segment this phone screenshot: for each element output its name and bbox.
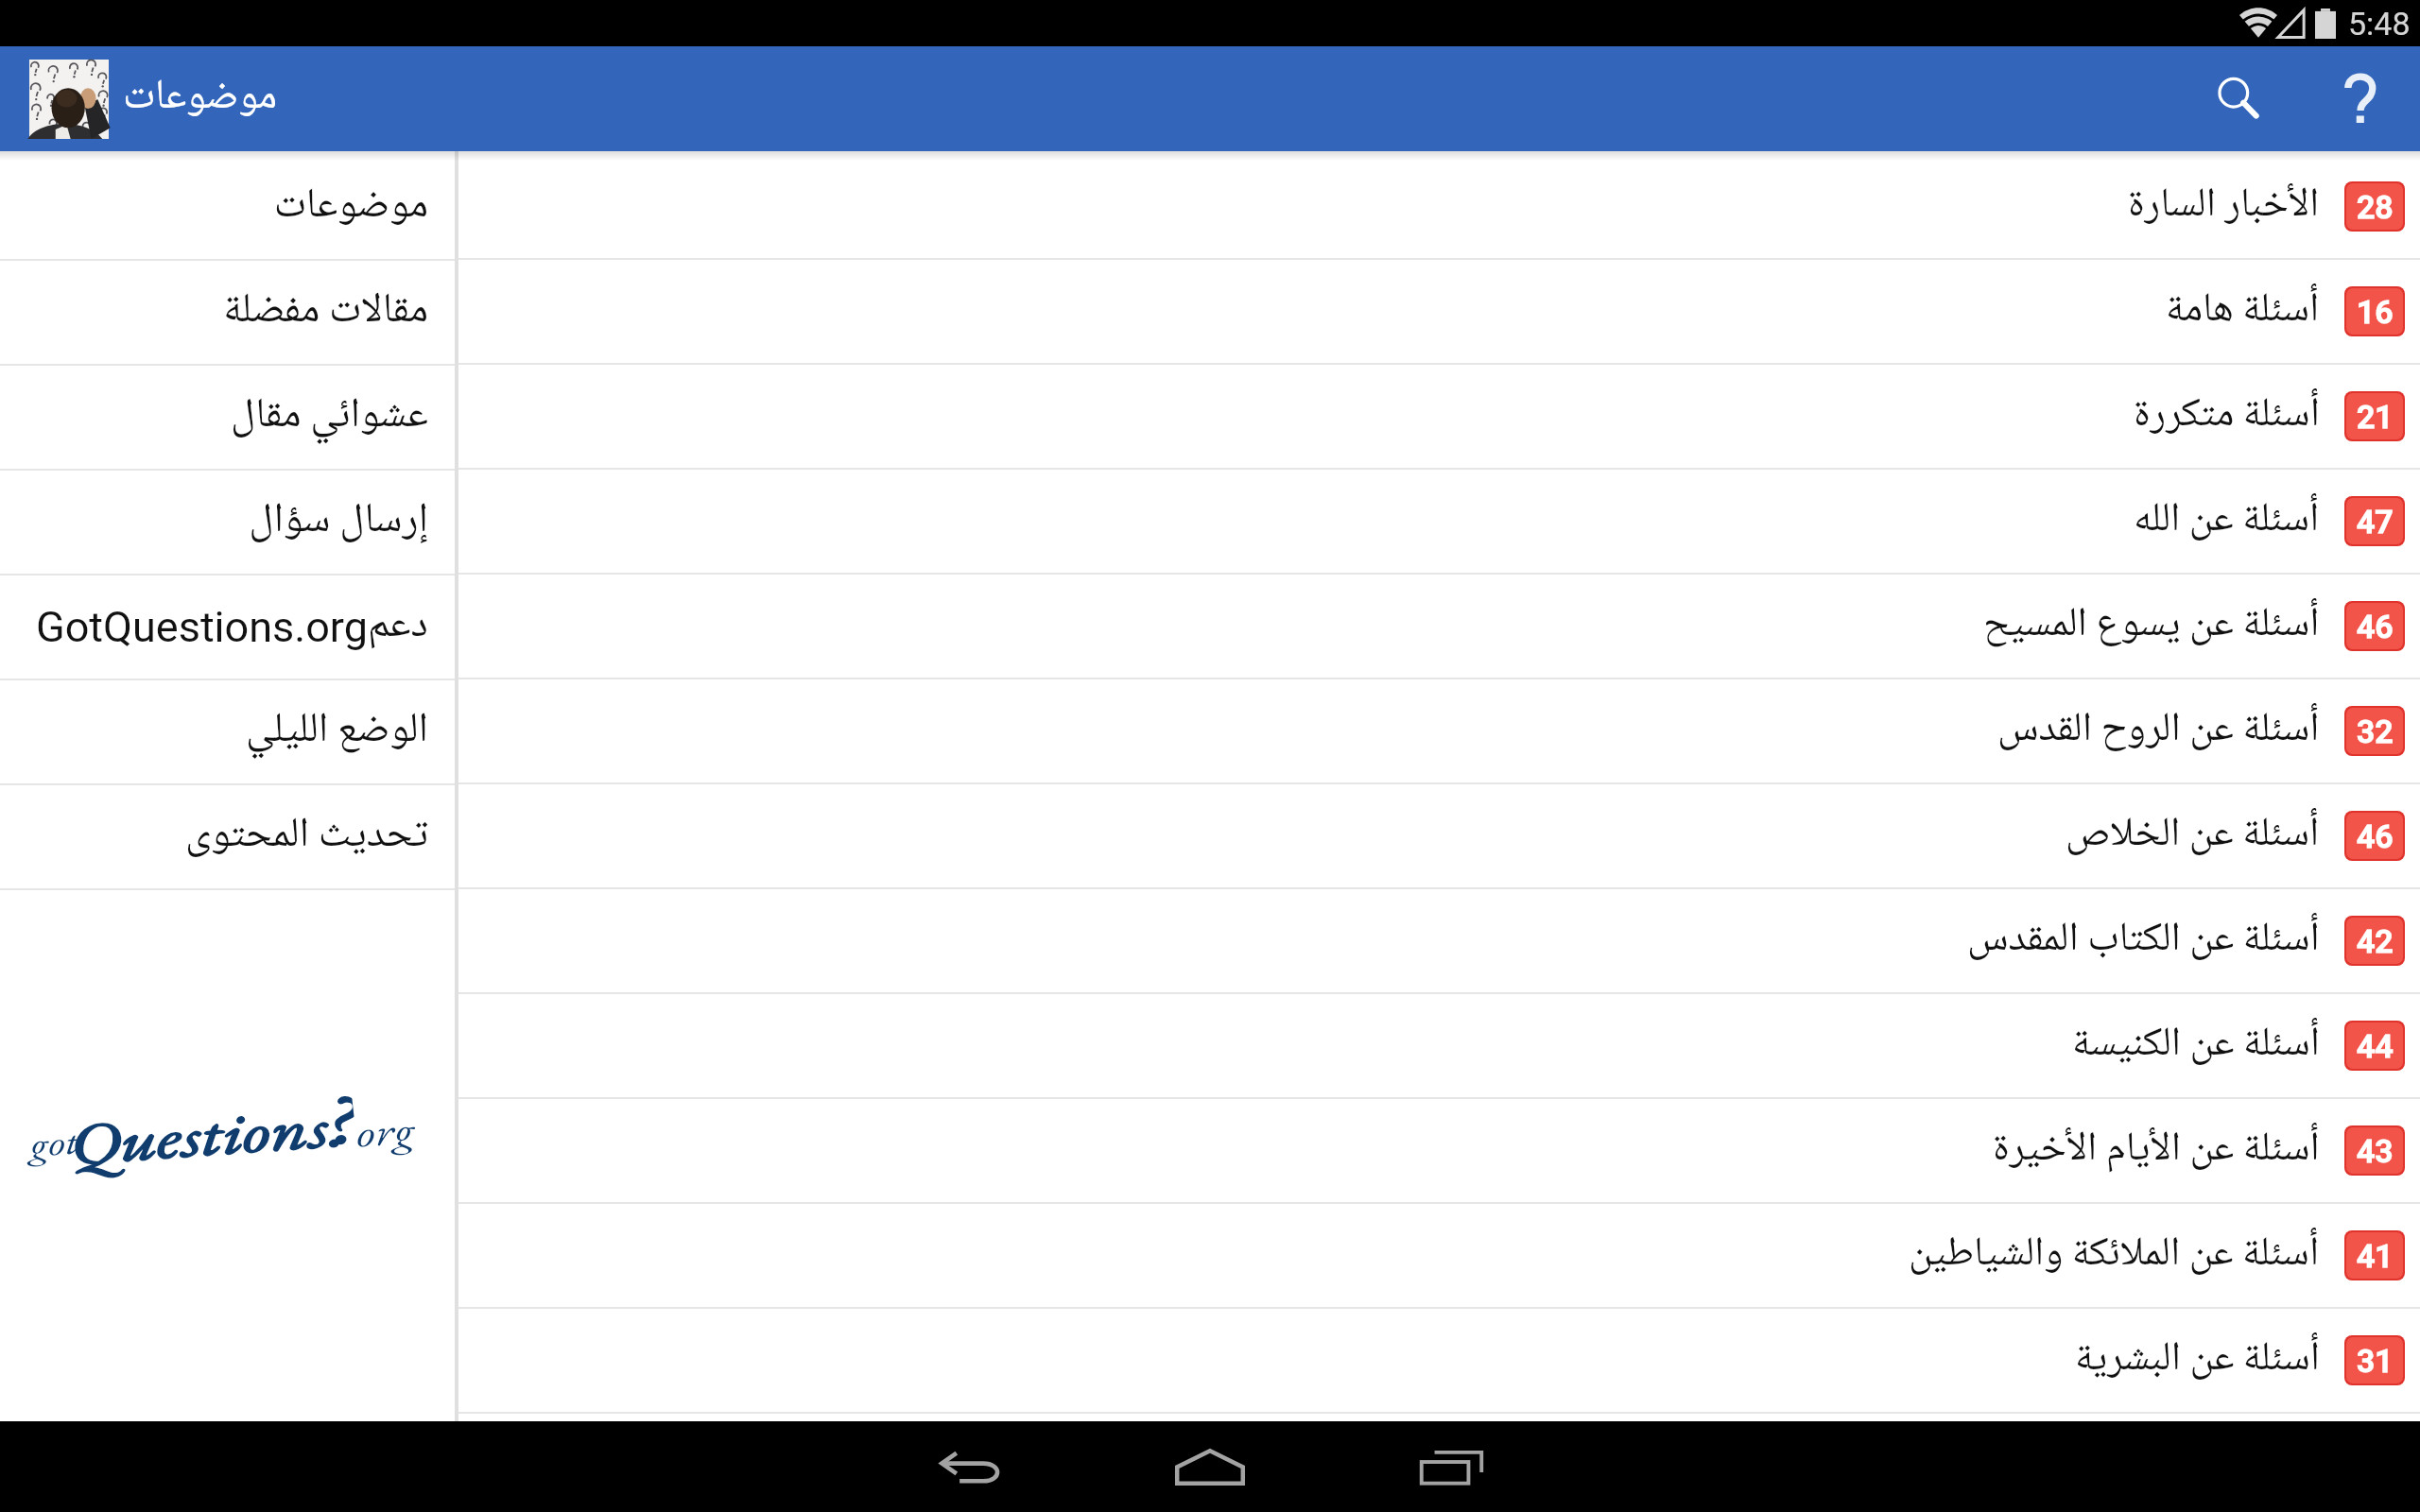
- staticText: GotQuestions.org: [36, 602, 368, 652]
- button[interactable]: Up: [29, 60, 109, 139]
- button[interactable]: GotQuestions.org: [0, 576, 455, 679]
- staticText: 46: [2357, 817, 2394, 855]
- button[interactable]: أسئلة عن البشرية: [458, 1309, 2420, 1412]
- staticText: تحديث المحتوى: [185, 801, 428, 872]
- staticText: دعم: [368, 592, 428, 662]
- staticText: أسئلة عن البشرية: [2075, 1326, 2320, 1395]
- staticText: 42: [2357, 922, 2394, 960]
- staticText: ?: [321, 1073, 358, 1156]
- button[interactable]: الأخبار السارة: [458, 155, 2420, 258]
- staticText: أسئلة متكررة: [2134, 382, 2320, 451]
- staticText: إرسال سؤال: [249, 487, 428, 558]
- button[interactable]: عشوائي مقال: [0, 366, 455, 469]
- staticText: 43: [2357, 1132, 2394, 1170]
- button[interactable]: Recent apps: [1390, 1421, 1512, 1512]
- button[interactable]: الوضع الليلي: [0, 680, 455, 783]
- staticText: أسئلة عن يسوع المسيح: [1983, 592, 2320, 661]
- staticText: أسئلة عن الروح القدس: [1997, 696, 2320, 765]
- button[interactable]: أسئلة عن يسوع المسيح: [458, 575, 2420, 678]
- staticText: 32: [2357, 713, 2394, 750]
- staticText: 21: [2357, 398, 2394, 436]
- button[interactable]: Home: [1149, 1421, 1271, 1512]
- button[interactable]: موضوعات: [0, 156, 455, 259]
- button[interactable]: أسئلة عن الملائكة والشياطين: [458, 1204, 2420, 1307]
- staticText: got: [27, 1118, 81, 1168]
- staticText: 47: [2357, 503, 2394, 541]
- button[interactable]: أسئلة هامة: [458, 260, 2420, 363]
- staticText: 28: [2357, 188, 2394, 226]
- button[interactable]: أسئلة عن الكنيسة: [458, 994, 2420, 1097]
- staticText: أسئلة هامة: [2166, 277, 2320, 346]
- button[interactable]: أسئلة عن الخلاص: [458, 784, 2420, 887]
- staticText: 46: [2357, 608, 2394, 645]
- staticText: أسئلة عن الخلاص: [2066, 801, 2320, 870]
- button[interactable]: أسئلة عن الكتاب المقدس: [458, 889, 2420, 992]
- button[interactable]: Help: [2307, 46, 2412, 151]
- staticText: 5:48: [2348, 5, 2411, 43]
- staticText: Questions.: [65, 1087, 348, 1181]
- button[interactable]: Search: [2186, 46, 2291, 151]
- staticText: الأخبار السارة: [2128, 172, 2320, 241]
- button[interactable]: أسئلة عن الأيام الأخيرة: [458, 1099, 2420, 1202]
- staticText: مقالات مفضلة: [223, 277, 428, 348]
- button[interactable]: أسئلة عن الروح القدس: [458, 679, 2420, 782]
- button[interactable]: أسئلة متكررة: [458, 365, 2420, 468]
- staticText: أسئلة عن الملائكة والشياطين: [1909, 1221, 2320, 1290]
- staticText: موضوعات: [123, 63, 278, 134]
- staticText: 16: [2357, 293, 2394, 331]
- staticText: الوضع الليلي: [245, 696, 428, 767]
- staticText: أسئلة عن الأيام الأخيرة: [1993, 1116, 2320, 1185]
- staticText: عشوائي مقال: [231, 382, 428, 453]
- staticText: أسئلة عن الله: [2134, 487, 2320, 556]
- button[interactable]: تحديث المحتوى: [0, 785, 455, 888]
- button[interactable]: Back: [909, 1421, 1032, 1512]
- staticText: org: [353, 1104, 417, 1158]
- staticText: 41: [2357, 1237, 2394, 1275]
- staticText: 31: [2357, 1342, 2394, 1380]
- staticText: أسئلة عن الكنيسة: [2072, 1011, 2320, 1080]
- button[interactable]: أسئلة عن الله: [458, 470, 2420, 573]
- staticText: أسئلة عن الكتاب المقدس: [1967, 906, 2320, 975]
- button[interactable]: مقالات مفضلة: [0, 261, 455, 364]
- staticText: 44: [2357, 1027, 2394, 1065]
- staticText: موضوعات: [273, 172, 428, 243]
- button[interactable]: إرسال سؤال: [0, 471, 455, 574]
